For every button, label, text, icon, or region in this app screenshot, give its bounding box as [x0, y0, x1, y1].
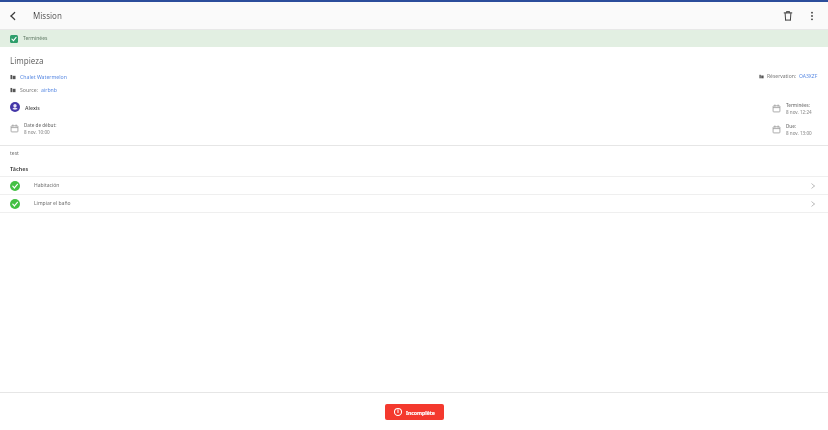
staticText: Limpieza — [10, 55, 44, 66]
staticText: OA3XZF — [799, 73, 818, 80]
staticText: Source: — [20, 86, 39, 93]
button[interactable]: Back — [0, 3, 26, 29]
staticText: test — [10, 150, 19, 157]
staticText: airbnb — [41, 86, 57, 93]
button[interactable]: Habitación — [0, 177, 828, 195]
staticText: Incomplète — [406, 409, 435, 416]
staticText: 8 nov. 12:24 — [786, 109, 812, 115]
staticText: Mission — [33, 10, 62, 21]
staticText: Réservation: — [767, 73, 797, 80]
staticText: Date de début: — [24, 122, 57, 128]
staticText: Terminées — [23, 35, 48, 42]
staticText: Due: — [786, 123, 797, 129]
staticText: Terminées: — [786, 102, 811, 108]
button[interactable]: More options — [800, 4, 824, 28]
staticText: Alexis — [25, 104, 40, 111]
button[interactable]: Delete — [776, 4, 800, 28]
staticText: Limpiar el baño — [34, 200, 71, 207]
staticText: 8 nov. 10:00 — [24, 129, 50, 135]
staticText: Tâches — [10, 165, 29, 172]
button[interactable]: Incomplète — [385, 404, 444, 420]
staticText: 8 nov. 13:00 — [786, 130, 812, 136]
staticText: Habitación — [34, 182, 60, 189]
staticText: Chalet Watermelon — [20, 73, 67, 80]
button[interactable]: Limpiar el baño — [0, 195, 828, 213]
